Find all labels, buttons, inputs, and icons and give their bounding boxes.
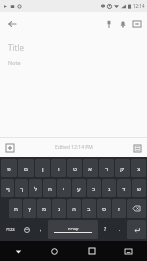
staticText: ל (34, 185, 38, 192)
button[interactable]: מ (37, 199, 51, 218)
button[interactable]: י (57, 179, 71, 197)
staticText: י (63, 185, 65, 192)
staticText: ?123 (6, 227, 15, 232)
button[interactable]: Pin (102, 17, 116, 31)
staticText: ? (104, 226, 107, 233)
staticText: ו (58, 165, 60, 172)
staticText: Title (8, 42, 24, 53)
staticText: ם (24, 165, 28, 172)
button[interactable]: Emoji (20, 220, 33, 239)
button[interactable]: ?123 (1, 220, 19, 239)
button[interactable]: ך (15, 179, 28, 197)
staticText: Edited 12:14 PM (55, 144, 93, 151)
button[interactable]: ע (72, 179, 86, 197)
button[interactable]: ק (115, 159, 130, 177)
staticText: ט (73, 165, 77, 172)
button[interactable]: Back (5, 17, 19, 31)
button[interactable]: ג (102, 179, 116, 197)
button[interactable]: ש (132, 179, 146, 197)
button[interactable]: ץ (23, 199, 36, 218)
button[interactable]: ת (9, 199, 22, 218)
staticText: נ (58, 205, 61, 212)
button[interactable]: . (113, 220, 126, 239)
button[interactable]: ן (35, 159, 50, 177)
button[interactable]: Add (3, 141, 17, 155)
button[interactable]: א (83, 159, 98, 177)
button[interactable]: Enter (127, 220, 146, 239)
button[interactable]: More options (130, 141, 144, 155)
button[interactable]: ט (67, 159, 82, 177)
button[interactable]: ב (82, 199, 96, 218)
staticText: ש (137, 185, 142, 192)
staticText: ב (87, 205, 91, 212)
staticText: ן (42, 165, 44, 172)
staticText: צ (137, 165, 141, 172)
staticText: ח (48, 185, 52, 192)
button[interactable]: Back (0, 241, 36, 261)
button[interactable]: ף (1, 179, 14, 197)
button[interactable]: Reminder (116, 17, 130, 31)
button[interactable]: ? (99, 220, 112, 239)
staticText: ה (72, 205, 76, 212)
button[interactable]: נ (52, 199, 66, 218)
staticText: א (88, 165, 93, 172)
staticText: ך (20, 185, 24, 192)
button[interactable]: Backspace (127, 199, 146, 218)
staticText: ס (102, 205, 106, 212)
button[interactable]: ס (97, 199, 111, 218)
button[interactable]: ל (29, 179, 42, 197)
button[interactable]: ו (51, 159, 66, 177)
button[interactable]: ח (43, 179, 56, 197)
staticText: . (119, 226, 121, 233)
button[interactable]: Home (36, 241, 73, 261)
button[interactable]: ר (99, 159, 114, 177)
staticText: ע (77, 185, 81, 192)
button[interactable]: , (34, 220, 47, 239)
staticText: ד (122, 185, 126, 192)
staticText: ק (120, 165, 125, 172)
button[interactable]: ה (67, 199, 81, 218)
button[interactable]: כ (87, 179, 101, 197)
button[interactable]: ז (112, 199, 126, 218)
button[interactable]: Switch keyboard (110, 241, 147, 261)
staticText: 12:14 (133, 3, 145, 9)
button[interactable]: Archive (130, 17, 144, 31)
staticText: ז (118, 205, 121, 212)
button[interactable]: פ (1, 159, 17, 177)
button[interactable]: ם (18, 159, 34, 177)
staticText: ר (105, 165, 109, 172)
staticText: ת (14, 205, 18, 212)
staticText: ץ (28, 205, 32, 212)
staticText: ף (6, 185, 10, 192)
staticText: ג (108, 185, 111, 192)
staticText: עברית (68, 226, 79, 231)
button[interactable]: ד (117, 179, 131, 197)
staticText: כ (92, 185, 96, 192)
staticText: Note (8, 59, 21, 66)
staticText: , (40, 226, 42, 233)
staticText: מ (42, 205, 47, 212)
button[interactable]: Space (48, 220, 98, 239)
staticText: פ (7, 165, 11, 172)
button[interactable]: Recents (73, 241, 110, 261)
button[interactable]: צ (131, 159, 146, 177)
